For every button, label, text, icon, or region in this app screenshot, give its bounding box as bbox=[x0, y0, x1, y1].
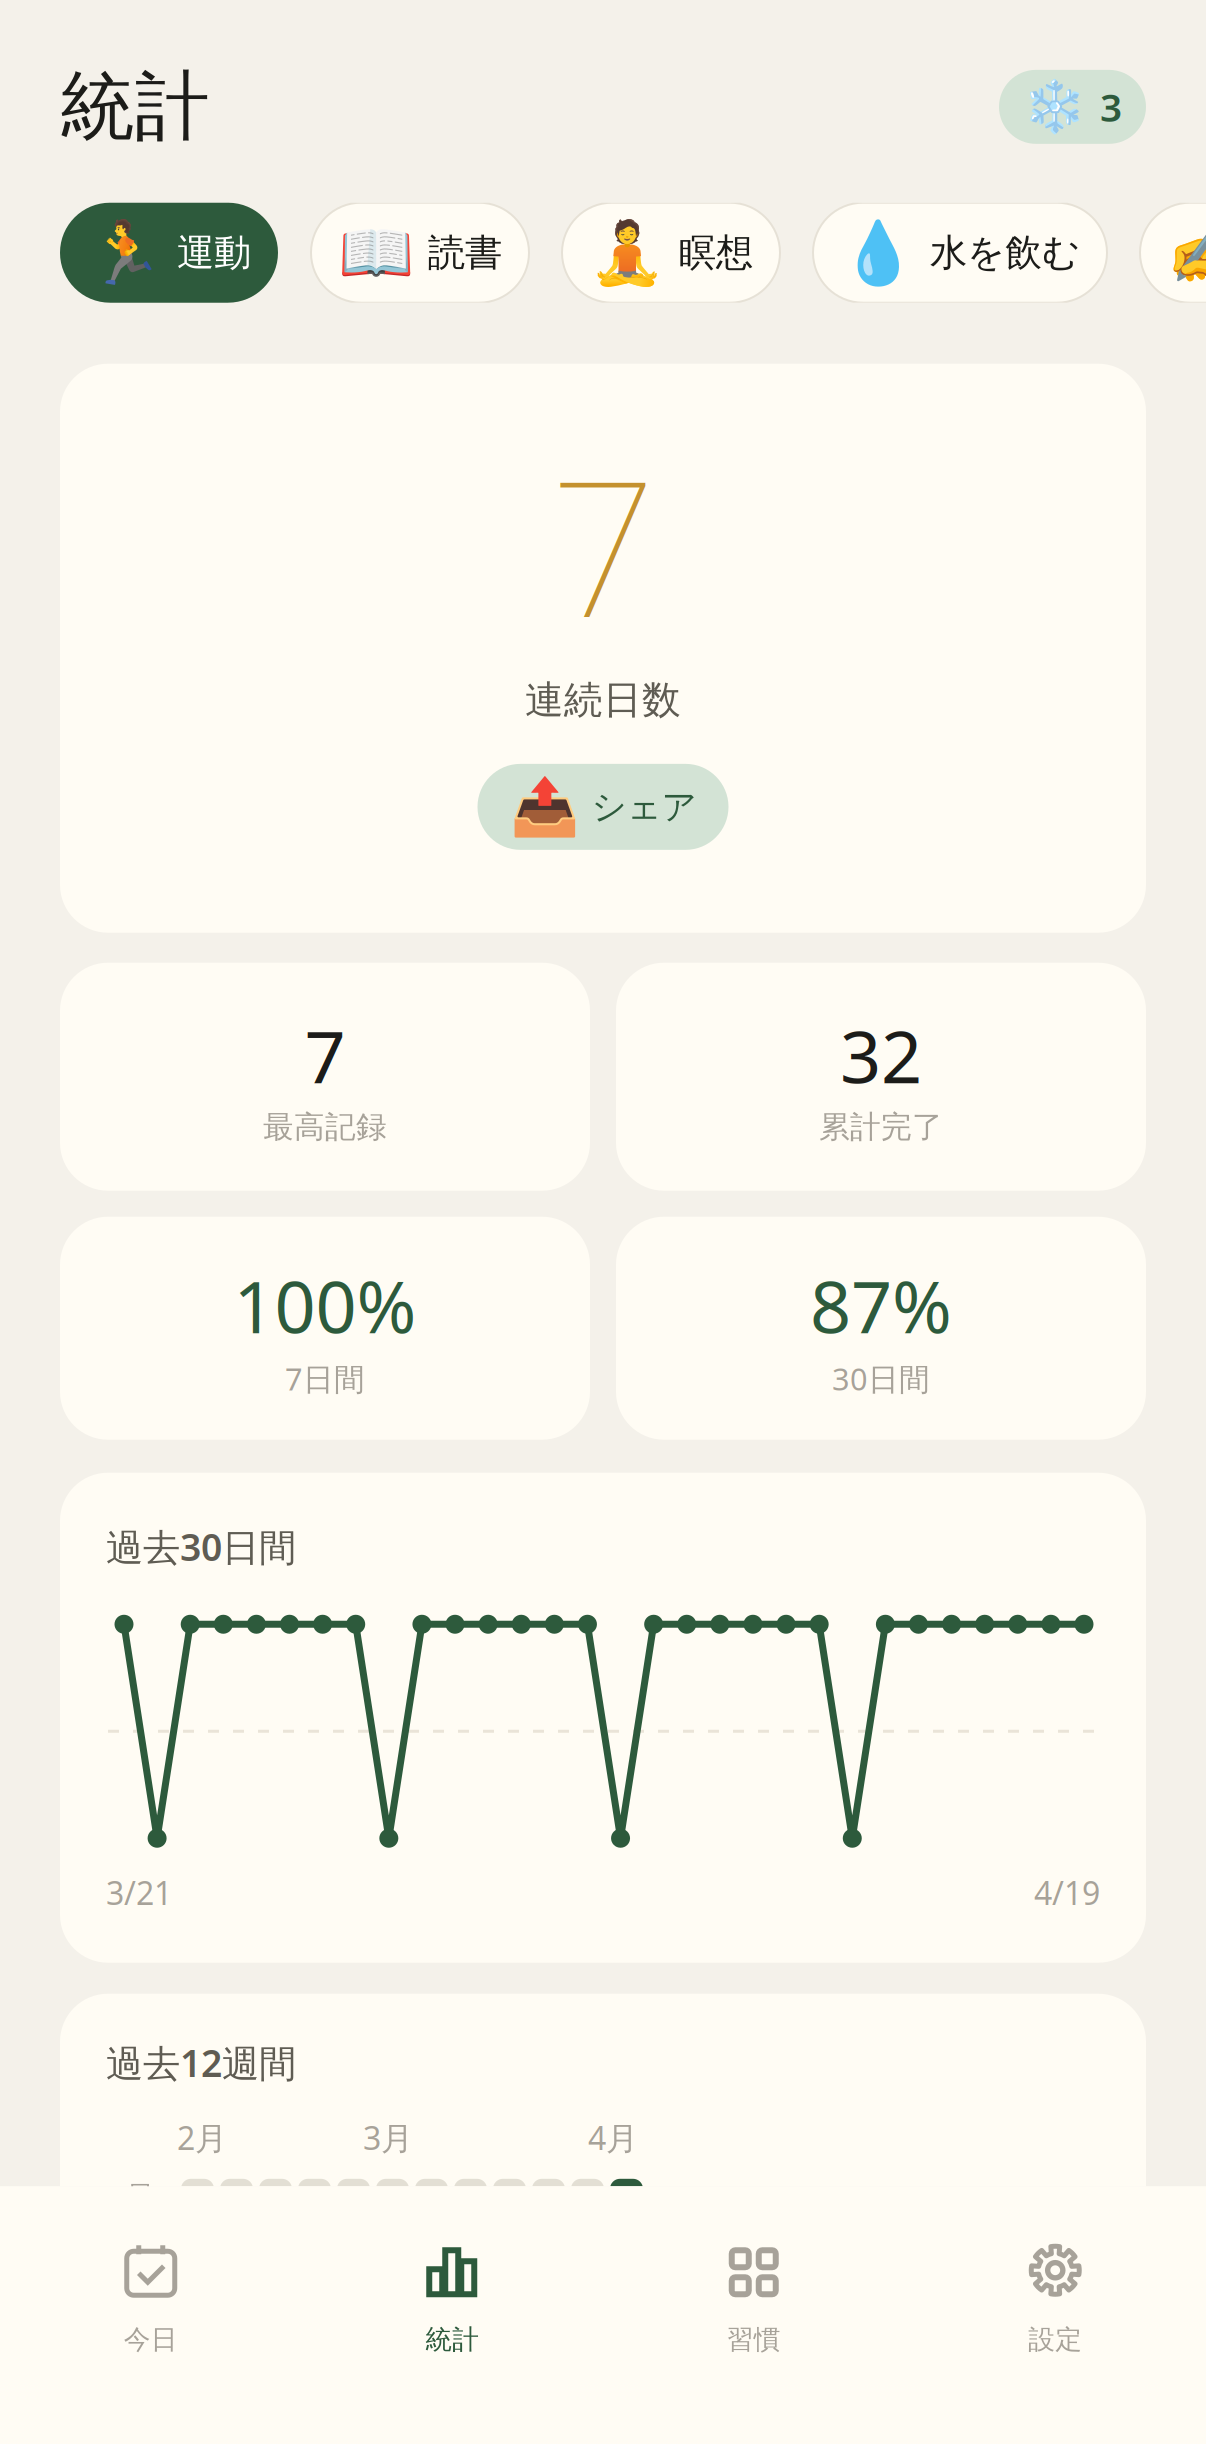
staticText: 運動 bbox=[177, 230, 251, 276]
button[interactable]: 習慣 bbox=[603, 2243, 904, 2356]
staticText: 連続日数 bbox=[525, 676, 681, 724]
staticText: 統計 bbox=[425, 2323, 479, 2356]
staticText: 📖 bbox=[338, 218, 414, 288]
staticText: 2月 bbox=[177, 2116, 227, 2159]
staticText: 🧘 bbox=[589, 218, 665, 288]
staticText: 3 bbox=[1100, 81, 1122, 132]
button[interactable]: ✍️ bbox=[1140, 203, 1206, 303]
staticText: 📤 bbox=[509, 775, 579, 839]
staticText: 過去12週間 bbox=[106, 2038, 296, 2087]
staticText: 瞑想 bbox=[679, 230, 753, 276]
button[interactable]: 今日 bbox=[0, 2243, 301, 2356]
staticText: シェア bbox=[591, 786, 696, 828]
staticText: ✍️ bbox=[1167, 218, 1206, 288]
staticText: ❄️ bbox=[1023, 78, 1086, 136]
staticText: 設定 bbox=[1028, 2323, 1082, 2356]
staticText: 日 bbox=[127, 2179, 154, 2212]
staticText: 87% bbox=[810, 1257, 952, 1353]
staticText: 32 bbox=[840, 1008, 922, 1103]
staticText: 30日間 bbox=[832, 1358, 930, 1399]
staticText: 統計 bbox=[60, 61, 210, 153]
staticText: 水を飲む bbox=[930, 230, 1080, 276]
staticText: 100% bbox=[233, 1257, 416, 1353]
button[interactable]: 🏃 bbox=[60, 203, 278, 303]
staticText: 最高記録 bbox=[263, 1108, 387, 1146]
staticText: 過去30日間 bbox=[106, 1522, 296, 1571]
button[interactable]: 🧘 bbox=[562, 203, 780, 303]
staticText: 7 bbox=[549, 419, 656, 668]
staticText: 習慣 bbox=[727, 2323, 781, 2356]
staticText: 累計完了 bbox=[819, 1108, 943, 1146]
staticText: 3月 bbox=[363, 2116, 413, 2159]
staticText: 4/19 bbox=[1034, 1871, 1100, 1914]
button[interactable]: ❄️ bbox=[999, 70, 1146, 144]
staticText: 今日 bbox=[124, 2323, 178, 2356]
staticText: 🏃 bbox=[87, 218, 163, 288]
button[interactable]: 📤 bbox=[477, 764, 728, 850]
staticText: 3/21 bbox=[106, 1871, 172, 1914]
staticText: 💧 bbox=[840, 218, 916, 288]
button[interactable]: 設定 bbox=[904, 2243, 1206, 2356]
staticText: 7日間 bbox=[285, 1358, 365, 1399]
staticText: 読書 bbox=[428, 230, 502, 276]
staticText: 4月 bbox=[588, 2116, 638, 2159]
staticText: 7 bbox=[304, 1008, 345, 1103]
button[interactable]: 💧 bbox=[813, 203, 1107, 303]
button[interactable]: 📖 bbox=[311, 203, 529, 303]
button[interactable]: 統計 bbox=[301, 2243, 603, 2356]
